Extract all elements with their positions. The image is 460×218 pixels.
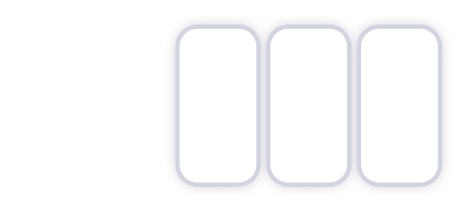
button[interactable]: Page 2 — [268, 27, 349, 185]
button[interactable]: Page 3 — [359, 27, 440, 185]
button[interactable]: Page 1 — [177, 27, 258, 185]
